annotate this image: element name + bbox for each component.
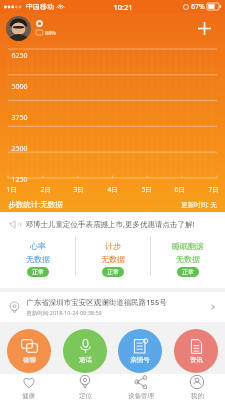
staticText: 5日 xyxy=(141,185,152,194)
button[interactable]: User avatar xyxy=(6,16,31,41)
button[interactable]: 睡眠翻滚 xyxy=(151,236,225,288)
staticText: 无数据 xyxy=(176,254,200,264)
staticText: 无数据 xyxy=(26,254,50,264)
button[interactable]: 设备管理 xyxy=(113,374,169,400)
button[interactable]: 计步 xyxy=(76,236,150,288)
staticText: 6250 xyxy=(11,51,28,61)
staticText: 计步 xyxy=(105,241,121,251)
staticText: 67% xyxy=(191,2,205,12)
staticText: 10:21 xyxy=(113,2,133,12)
staticText: 定位 xyxy=(79,392,92,400)
staticText: 无数据 xyxy=(101,254,125,264)
button[interactable]: 亲情号 xyxy=(118,329,162,373)
button[interactable]: 邓博士儿童定位手表震撼上市,更多优惠请点击了解! xyxy=(0,212,225,236)
staticText: 心率 xyxy=(30,241,46,251)
staticText: 邓博士儿童定位手表震撼上市,更多优惠请点击了解! xyxy=(25,219,195,229)
staticText: 资讯 xyxy=(190,356,203,364)
staticText: 正常 xyxy=(182,268,194,276)
staticText: 中国移动 xyxy=(26,2,54,11)
staticText: 7日 xyxy=(208,185,219,194)
button[interactable]: 心率 xyxy=(0,236,75,288)
staticText: 6日 xyxy=(174,185,185,194)
staticText: 1250 xyxy=(11,175,28,185)
staticText: 睡眠翻滚 xyxy=(172,241,204,251)
button[interactable]: 健康 xyxy=(0,374,57,400)
button[interactable]: 通话 xyxy=(63,329,107,373)
staticText: 亲情号 xyxy=(130,356,150,364)
staticText: 设备管理 xyxy=(128,392,154,400)
staticText: 广东省深圳市宝安区观澜街道福民路155号 xyxy=(26,297,167,307)
button[interactable]: 我的 xyxy=(169,374,225,400)
staticText: 正常 xyxy=(32,268,44,276)
staticText: 2500 xyxy=(11,144,28,154)
button[interactable]: 定位 xyxy=(57,374,113,400)
staticText: 5000 xyxy=(11,82,28,92)
staticText: 微聊 xyxy=(23,356,36,364)
staticText: 3日 xyxy=(73,185,84,194)
staticText: 2日 xyxy=(40,185,51,194)
staticText: 1日 xyxy=(6,185,17,194)
button[interactable]: 广东省深圳市宝安区观澜街道福民路155号 xyxy=(0,292,225,322)
staticText: 88% xyxy=(45,29,56,36)
staticText: 我的 xyxy=(191,392,204,400)
staticText: 步数统计:无数据 xyxy=(8,199,63,209)
button[interactable]: 资讯 xyxy=(174,329,218,373)
staticText: 更新时间:2018-10-24 09:38:59 xyxy=(26,309,102,317)
button[interactable]: Add device xyxy=(191,15,217,41)
staticText: 健康 xyxy=(22,392,35,400)
staticText: 通话 xyxy=(79,356,92,364)
staticText: 4日 xyxy=(107,185,118,194)
staticText: 正常 xyxy=(107,268,119,276)
button[interactable]: 微聊 xyxy=(7,329,51,373)
staticText: 3750 xyxy=(11,113,28,123)
staticText: 更新时间: 无 xyxy=(181,200,217,209)
